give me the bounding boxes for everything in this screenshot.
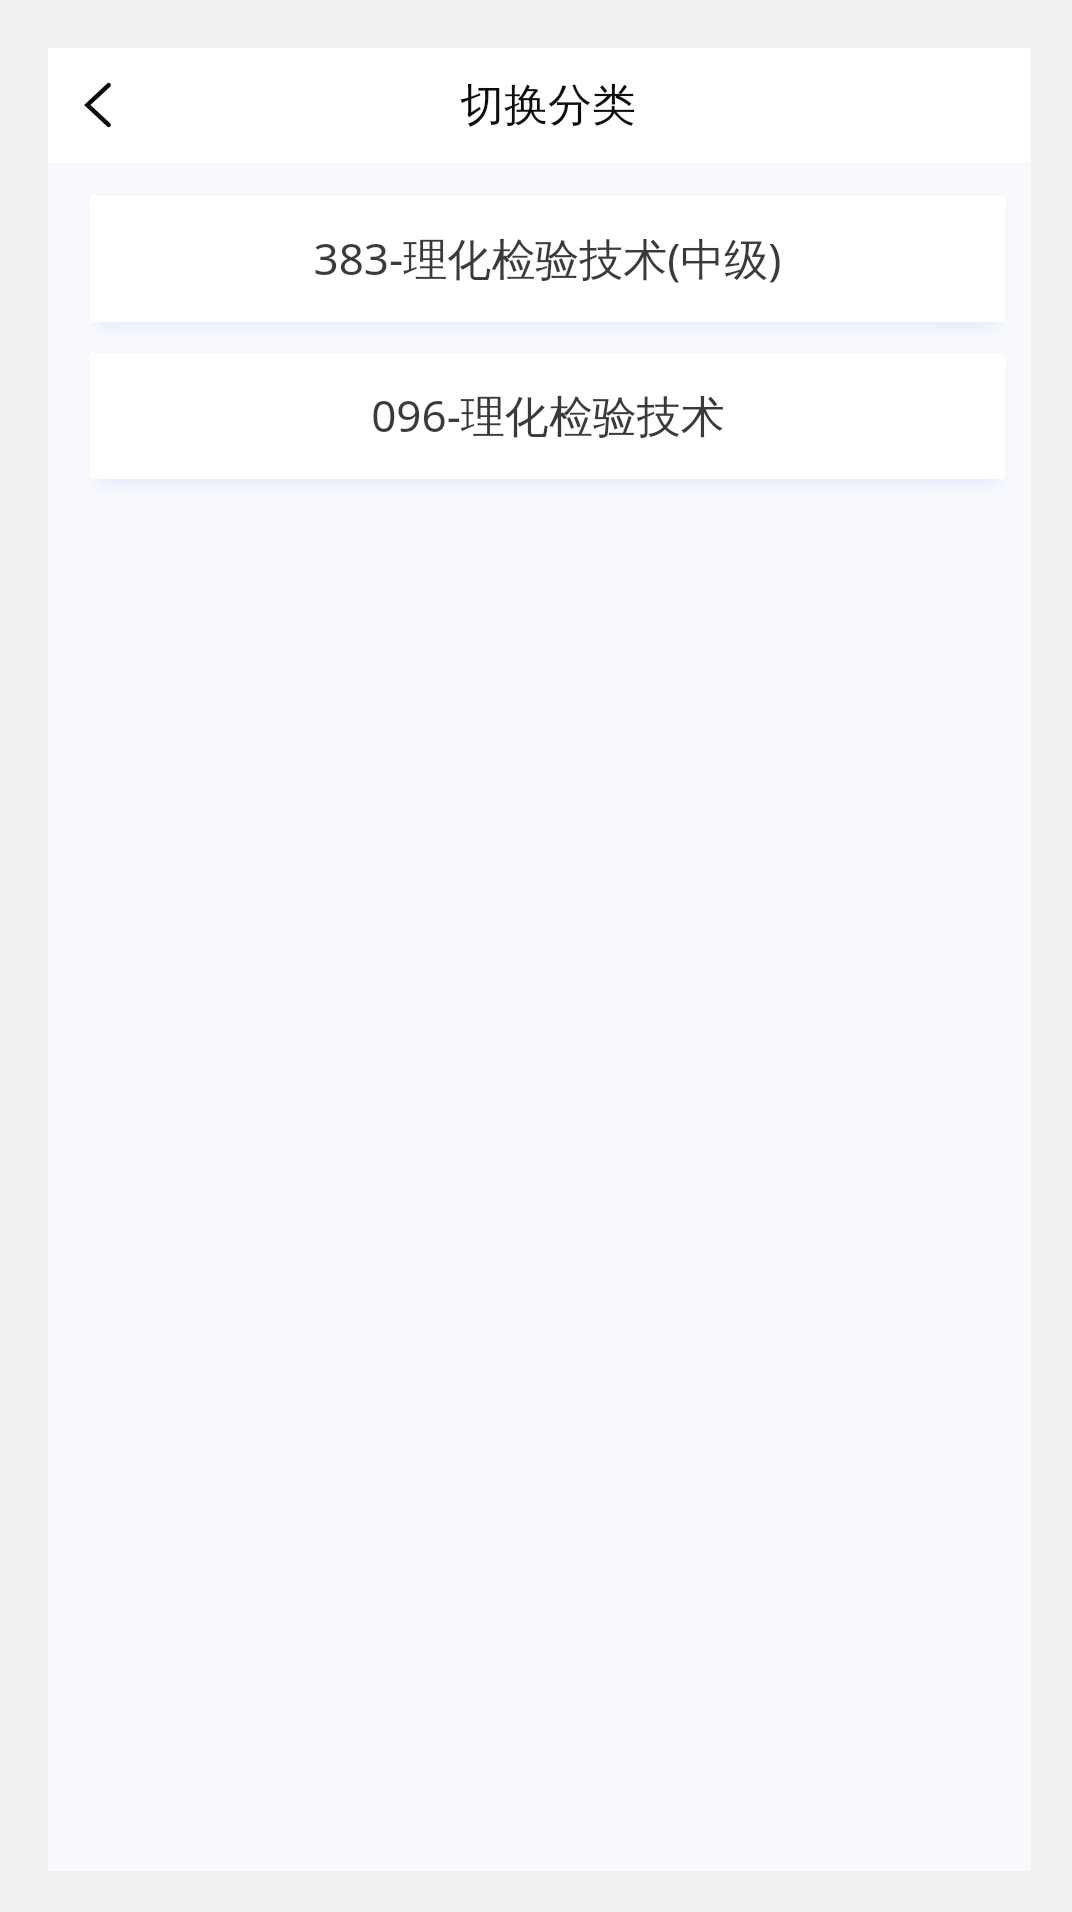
staticText: 切换分类 xyxy=(460,78,636,133)
button[interactable]: Back xyxy=(48,48,147,162)
button[interactable]: 096-理化检验技术 xyxy=(90,353,1005,479)
button[interactable]: 383-理化检验技术(中级) xyxy=(90,196,1005,322)
staticText: 096-理化检验技术 xyxy=(371,385,725,445)
staticText: 383-理化检验技术(中级) xyxy=(313,228,782,288)
